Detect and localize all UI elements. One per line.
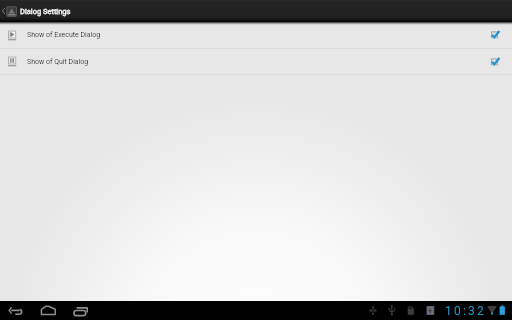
button[interactable]: Show of Execute Dialog: [0, 22, 512, 48]
button[interactable]: Toggle setting: [489, 28, 501, 42]
button[interactable]: Show of Quit Dialog: [0, 49, 512, 74]
staticText: Show of Quit Dialog: [27, 58, 89, 66]
button[interactable]: Back: [7, 301, 25, 320]
staticText: 10:32: [445, 304, 486, 318]
staticText: Show of Execute Dialog: [27, 31, 101, 39]
staticText: Dialog Settings: [20, 7, 71, 16]
button[interactable]: Home: [39, 301, 59, 320]
button[interactable]: Navigate up: [0, 0, 17, 22]
button[interactable]: Recent apps: [72, 301, 92, 320]
button[interactable]: Toggle setting: [489, 55, 501, 69]
